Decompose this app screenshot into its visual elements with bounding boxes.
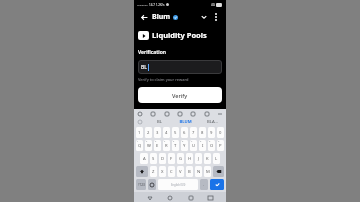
button[interactable]: Back [145, 193, 154, 202]
staticText: Verify [172, 92, 188, 99]
button[interactable]: Blum [152, 12, 178, 22]
button[interactable]: 6 [181, 127, 188, 138]
button[interactable]: H [186, 153, 193, 164]
button[interactable]: . [200, 179, 208, 190]
button[interactable]: Emoji [148, 179, 156, 190]
button[interactable]: K [204, 153, 211, 164]
staticText: F [170, 156, 173, 162]
staticText: Verify to claim your reward [138, 77, 189, 82]
button[interactable]: P [217, 140, 224, 151]
button[interactable]: Backspace [213, 166, 224, 177]
button[interactable]: Keyboard tool 0 [137, 111, 143, 117]
button[interactable]: L [213, 153, 220, 164]
staticText: X [161, 169, 164, 175]
staticText: 8 [201, 130, 204, 136]
staticText: 5 [173, 140, 175, 143]
button[interactable]: 2 [145, 127, 152, 138]
staticText: 1 [137, 140, 139, 143]
button[interactable]: 7 [190, 127, 197, 138]
button[interactable]: R [163, 140, 170, 151]
staticText: Blum [152, 12, 171, 22]
button[interactable]: Space [158, 179, 198, 190]
staticText: BL [157, 119, 162, 125]
button[interactable]: V [177, 166, 184, 177]
button[interactable]: Q [136, 140, 143, 151]
staticText: P [219, 143, 222, 149]
button[interactable]: F [168, 153, 175, 164]
button[interactable]: Keyboard tool 1 [150, 111, 156, 117]
button[interactable]: Keyboard tool 3 [177, 111, 183, 117]
button[interactable]: E [154, 140, 161, 151]
button[interactable]: Recents [186, 193, 195, 202]
button[interactable]: C [168, 166, 175, 177]
button[interactable]: I [199, 140, 206, 151]
button[interactable]: G [177, 153, 184, 164]
staticText: Y [183, 143, 186, 149]
button[interactable]: BL [146, 118, 172, 126]
button[interactable]: N [195, 166, 202, 177]
button[interactable]: W [145, 140, 152, 151]
button[interactable]: Liquidity Pools Gui... [134, 25, 226, 45]
button[interactable]: 9 [208, 127, 215, 138]
button[interactable]: T [172, 140, 179, 151]
button[interactable]: 0 [217, 127, 224, 138]
staticText: 0 [219, 130, 222, 136]
button[interactable]: 8 [199, 127, 206, 138]
button[interactable]: S [150, 153, 157, 164]
button[interactable]: BLA... [199, 118, 226, 126]
staticText: C [170, 169, 173, 175]
staticText: English (US) [171, 183, 186, 187]
button[interactable]: Home [165, 193, 174, 202]
button[interactable]: Shift [136, 166, 148, 177]
button[interactable]: Enter [210, 179, 224, 190]
button[interactable]: M [204, 166, 211, 177]
button[interactable]: BL [138, 60, 222, 74]
button[interactable]: A [140, 153, 148, 164]
staticText: 7 [192, 130, 195, 136]
button[interactable]: Keyboard tool 4 [190, 111, 196, 117]
button[interactable]: Y [181, 140, 188, 151]
staticText: M [206, 169, 210, 175]
staticText: 7 [191, 140, 193, 143]
button[interactable]: Keyboard tool 5 [204, 111, 210, 117]
button[interactable]: O [208, 140, 215, 151]
button[interactable]: J [195, 153, 202, 164]
staticText: S [152, 156, 155, 162]
button[interactable]: B [186, 166, 193, 177]
button[interactable]: D [159, 153, 166, 164]
button[interactable]: Keyboard tool 2 [164, 111, 170, 117]
button[interactable]: Hide keyboard [206, 193, 215, 202]
button[interactable]: Verify [138, 87, 222, 103]
button[interactable]: X [159, 166, 166, 177]
staticText: R [165, 143, 168, 149]
button[interactable]: Back [138, 11, 150, 23]
button[interactable]: ?123 [136, 179, 146, 190]
staticText: O [210, 143, 214, 149]
staticText: 6 [182, 140, 184, 143]
staticText: V [179, 169, 182, 175]
staticText: I [202, 143, 204, 149]
button[interactable]: More options [210, 11, 222, 23]
staticText: 1 [138, 130, 141, 136]
staticText: 0 [218, 140, 220, 143]
staticText: 3 [155, 140, 157, 143]
staticText: L [215, 156, 218, 162]
staticText: E [156, 143, 159, 149]
button[interactable]: Z [150, 166, 157, 177]
staticText: 14.7 1.2K/s [149, 3, 165, 7]
staticText: 9 [209, 140, 211, 143]
button[interactable]: 4 [163, 127, 170, 138]
button[interactable]: 1 [136, 127, 143, 138]
button[interactable]: 5 [172, 127, 179, 138]
staticText: 8 [200, 140, 202, 143]
staticText: 2 [147, 130, 150, 136]
button[interactable]: 3 [154, 127, 161, 138]
button[interactable]: U [190, 140, 197, 151]
button[interactable]: Keyboard tool 6 [217, 111, 223, 117]
staticText: D [161, 156, 165, 162]
button[interactable]: BLUM [172, 118, 199, 126]
staticText: 6 [183, 130, 186, 136]
button[interactable]: Expand [198, 11, 210, 23]
button[interactable]: Expand suggestions [134, 118, 146, 126]
staticText: Liquidity Pools Gui... [152, 30, 222, 40]
